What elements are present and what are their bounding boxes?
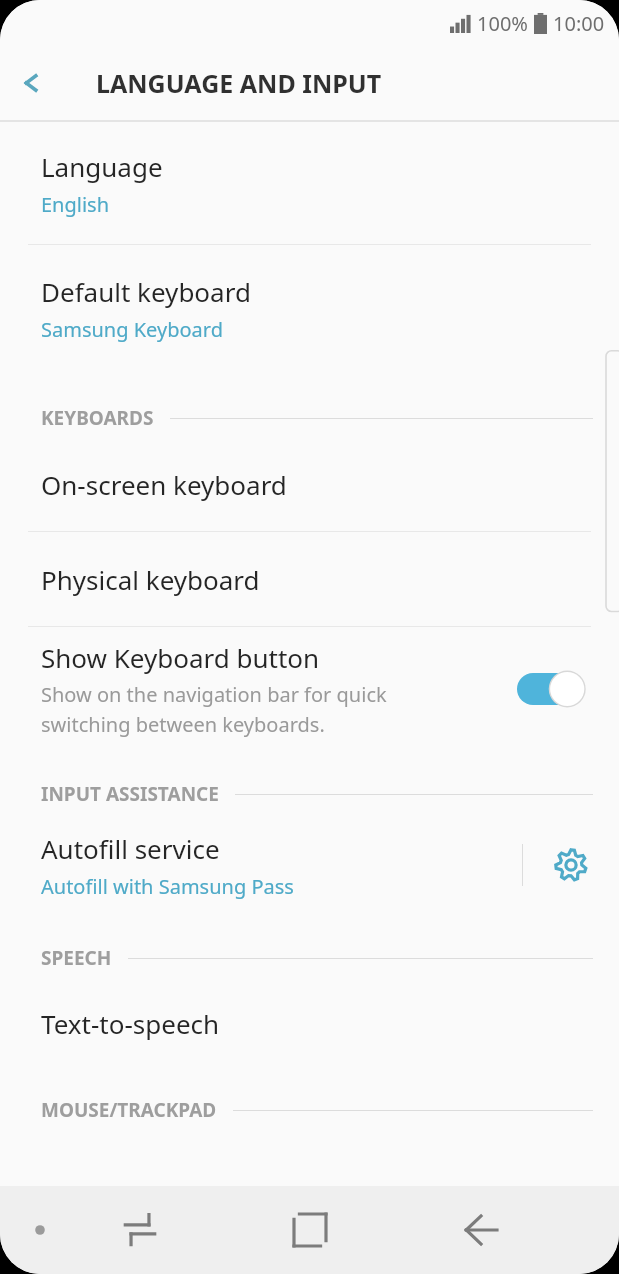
button[interactable]: Recent apps	[274, 1194, 346, 1266]
button[interactable]: Autofill service	[0, 813, 619, 917]
staticText: switching between keyboards.	[41, 711, 325, 738]
button[interactable]: Hide navigation bar	[14, 1204, 66, 1256]
staticText: INPUT ASSISTANCE	[41, 781, 219, 807]
button[interactable]: Back	[447, 1196, 515, 1264]
staticText: Autofill service	[41, 831, 220, 866]
staticText: Default keyboard	[41, 274, 251, 309]
staticText: 10:00	[553, 10, 605, 37]
button[interactable]: Show Keyboard button	[0, 627, 619, 751]
button[interactable]: Autofill service settings	[523, 813, 619, 917]
button[interactable]: On-screen keyboard	[0, 437, 619, 531]
button[interactable]: Language	[0, 122, 619, 244]
staticText: MOUSE/TRACKPAD	[41, 1097, 217, 1123]
staticText: On-screen keyboard	[41, 467, 287, 502]
staticText: Show Keyboard button	[41, 640, 320, 675]
staticText: Physical keyboard	[41, 562, 260, 597]
button[interactable]: Physical keyboard	[0, 532, 619, 626]
staticText: Text-to-speech	[41, 1006, 220, 1041]
button[interactable]: Switch keyboard	[106, 1196, 174, 1264]
button[interactable]: Back	[0, 51, 64, 115]
button[interactable]: Show Keyboard button toggle	[517, 669, 585, 709]
staticText: Autofill with Samsung Pass	[41, 873, 294, 900]
staticText: Show on the navigation bar for quick	[41, 681, 387, 708]
staticText: Samsung Keyboard	[41, 316, 223, 343]
staticText: KEYBOARDS	[41, 405, 154, 431]
staticText: LANGUAGE AND INPUT	[96, 66, 382, 100]
staticText: SPEECH	[41, 945, 112, 971]
staticText: English	[41, 191, 110, 218]
staticText: Language	[41, 149, 163, 184]
staticText: 100%	[477, 10, 528, 37]
button[interactable]: Text-to-speech	[0, 977, 619, 1069]
button[interactable]: Default keyboard	[0, 245, 619, 371]
